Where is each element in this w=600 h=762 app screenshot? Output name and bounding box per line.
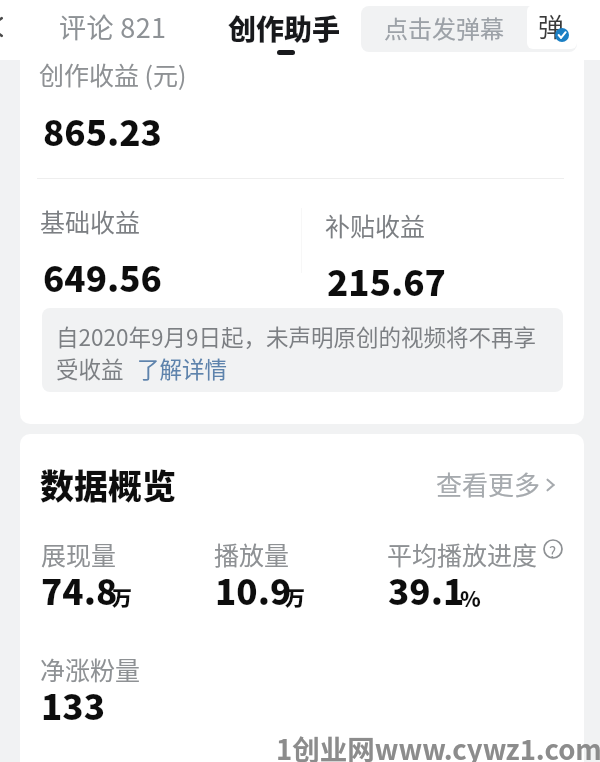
staticText: 播放量 [214,536,290,572]
staticText: 10.9 [215,564,292,615]
staticText: 865.23 [43,105,162,156]
button[interactable]: 弹幕开关 [527,5,577,49]
staticText: 受收益 [56,352,124,385]
staticText: 1创业网www.cywz1.com [276,728,600,762]
staticText: 评论 821 [59,7,167,46]
button[interactable]: 返回 [0,16,5,38]
button[interactable]: 点击发弹幕 [361,6,577,52]
staticText: 创作助手 [228,8,341,49]
staticText: 展现量 [41,536,117,572]
staticText: 创作收益 (元) [39,56,187,92]
staticText: 自2020年9月9日起，未声明原创的视频将不再享 [56,320,536,353]
button[interactable]: 评论 821 [50,4,180,56]
staticText: % [460,583,481,613]
staticText: 133 [41,679,105,730]
staticText: 万 [112,583,132,612]
staticText: 查看更多 [436,465,541,503]
staticText: 649.56 [43,251,162,302]
button[interactable]: 创作助手 [217,2,353,58]
staticText: 弹 [538,7,565,45]
button[interactable]: 自2020年9月9日起，未声明原创的视频将不再享 [42,308,563,392]
staticText: 点击发弹幕 [384,10,504,45]
staticText: 基础收益 [40,203,141,239]
button[interactable]: 查看更多 [430,462,564,508]
staticText: 数据概览 [40,460,176,509]
staticText: 万 [285,583,305,612]
staticText: ? [549,541,557,563]
staticText: 215.67 [327,255,446,306]
staticText: 39.1 [388,564,465,615]
staticText: 净涨粉量 [40,651,141,687]
staticText: 补贴收益 [325,207,426,243]
staticText: 了解详情 [137,352,228,385]
staticText: 74.8 [41,564,118,615]
button[interactable]: 平均播放进度说明 [541,537,565,561]
staticText: 平均播放进度 [387,536,538,572]
